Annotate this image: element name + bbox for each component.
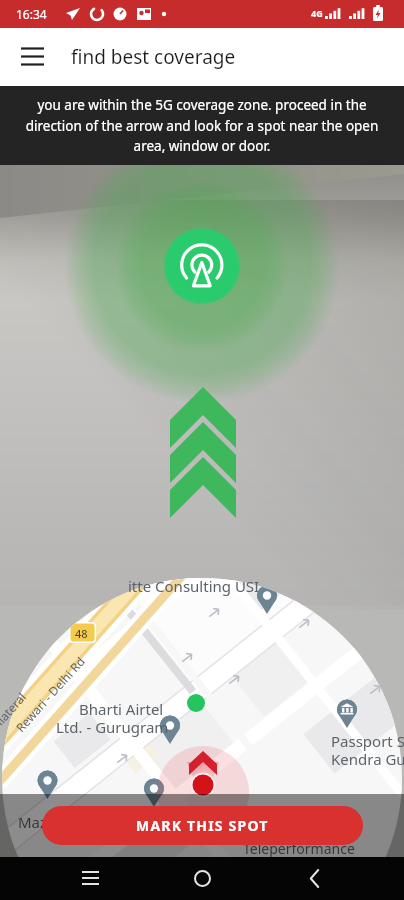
staticText: Ltd. - Gurugram [56, 717, 169, 737]
button[interactable]: Recents [68, 857, 112, 900]
staticText: you are within the 5G coverage zone. pro… [22, 96, 382, 155]
button[interactable]: Home [180, 857, 224, 900]
staticText: 48 [75, 626, 88, 641]
staticText: find best coverage [71, 44, 236, 70]
button[interactable]: Open navigation menu [12, 37, 52, 77]
staticText: 16:34 [16, 6, 47, 22]
staticText: Kendra Gur [331, 749, 404, 769]
staticText: MARK THIS SPOT [136, 816, 269, 835]
staticText: Passport S [331, 731, 404, 751]
staticText: Rewari - Delhi Rd [12, 653, 88, 735]
staticText: itte Consulting USI [128, 576, 260, 596]
staticText: rilateral [0, 689, 29, 732]
staticText: Bharti Airtel [79, 699, 164, 719]
staticText: 4G [311, 7, 323, 19]
staticText: Maz [18, 812, 48, 832]
button[interactable]: MARK THIS SPOT [42, 806, 363, 845]
staticText: Teleperformance [243, 839, 355, 858]
button[interactable]: Back [292, 857, 336, 900]
